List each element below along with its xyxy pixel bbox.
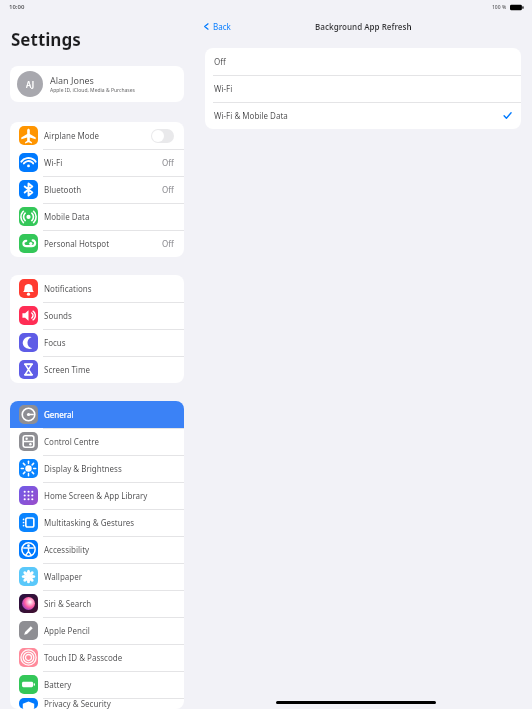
staticText: Siri & Search (44, 598, 174, 609)
staticText: 100 % (492, 4, 507, 11)
staticText: AJ (26, 79, 34, 90)
button[interactable]: Wi-Fi (205, 75, 521, 102)
staticText: Wi-Fi & Mobile Data (214, 110, 503, 121)
staticText: Alan Jones (50, 74, 94, 86)
button[interactable]: Siri & Search (10, 590, 184, 617)
button[interactable]: Battery (10, 671, 184, 698)
button[interactable]: Notifications (10, 275, 184, 302)
button[interactable]: Airplane Mode toggle (151, 129, 174, 143)
staticText: Wi-Fi (44, 157, 162, 168)
staticText: Off (162, 157, 174, 168)
staticText: Accessibility (44, 544, 174, 555)
button[interactable]: Sounds (10, 302, 184, 329)
staticText: Personal Hotspot (44, 238, 162, 249)
button[interactable]: Wi-Fi (10, 149, 184, 176)
button[interactable]: Airplane Mode (10, 122, 184, 149)
staticText: Off (162, 238, 174, 249)
staticText: Display & Brightness (44, 463, 174, 474)
staticText: Bluetooth (44, 184, 162, 195)
staticText: Focus (44, 337, 174, 348)
staticText: Screen Time (44, 364, 174, 375)
staticText: Notifications (44, 283, 174, 294)
staticText: Sounds (44, 310, 174, 321)
staticText: Wallpaper (44, 571, 174, 582)
button[interactable]: Mobile Data (10, 203, 184, 230)
button[interactable]: Focus (10, 329, 184, 356)
staticText: Control Centre (44, 436, 174, 447)
button[interactable]: Off (205, 48, 521, 75)
button[interactable]: Screen Time (10, 356, 184, 383)
button[interactable]: Personal Hotspot (10, 230, 184, 257)
button[interactable]: Touch ID & Passcode (10, 644, 184, 671)
staticText: Back (213, 21, 231, 32)
button[interactable]: AJ (10, 66, 184, 102)
button[interactable]: Control Centre (10, 428, 184, 455)
button[interactable]: Multitasking & Gestures (10, 509, 184, 536)
staticText: Multitasking & Gestures (44, 517, 174, 528)
button[interactable]: Home Screen & App Library (10, 482, 184, 509)
button[interactable]: Bluetooth (10, 176, 184, 203)
button[interactable]: Accessibility (10, 536, 184, 563)
staticText: Background App Refresh (315, 21, 412, 32)
button[interactable]: Wi-Fi & Mobile Data (205, 102, 521, 129)
staticText: General (44, 409, 174, 420)
staticText: Home Screen & App Library (44, 490, 174, 501)
staticText: Apple Pencil (44, 625, 174, 636)
staticText: Touch ID & Passcode (44, 652, 174, 663)
button[interactable]: General (10, 401, 184, 428)
button[interactable]: Privacy & Security (10, 698, 184, 709)
staticText: Off (214, 56, 512, 67)
staticText: 10:00 (9, 3, 25, 11)
staticText: Settings (11, 28, 81, 51)
staticText: Mobile Data (44, 211, 174, 222)
staticText: Privacy & Security (44, 698, 174, 709)
staticText: Apple ID, iCloud, Media & Purchases (50, 87, 135, 94)
staticText: Battery (44, 679, 174, 690)
button[interactable]: Back (200, 18, 234, 35)
staticText: Wi-Fi (214, 83, 512, 94)
staticText: Airplane Mode (44, 130, 151, 141)
button[interactable]: Wallpaper (10, 563, 184, 590)
staticText: Off (162, 184, 174, 195)
button[interactable]: Apple Pencil (10, 617, 184, 644)
button[interactable]: Display & Brightness (10, 455, 184, 482)
